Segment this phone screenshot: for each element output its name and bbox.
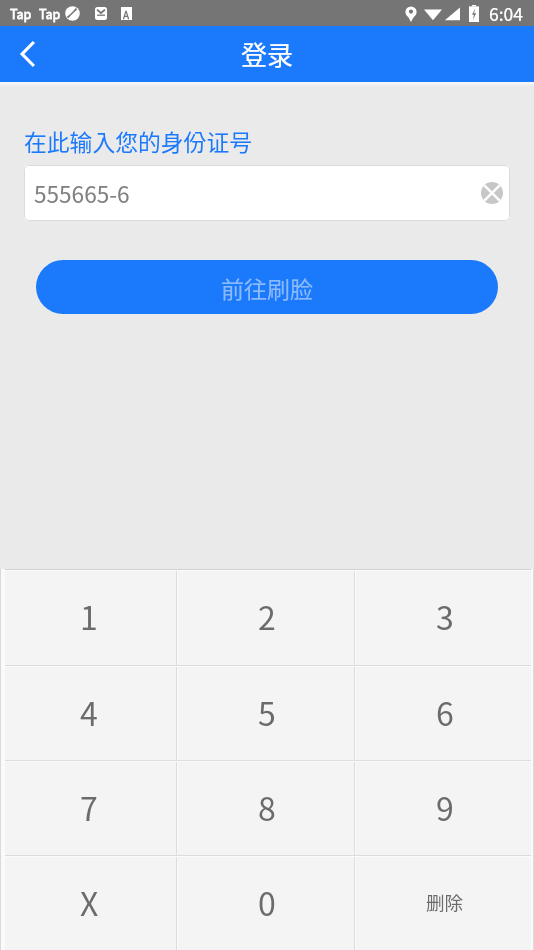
- button[interactable]: 0: [178, 857, 356, 950]
- button[interactable]: 7: [0, 762, 178, 855]
- button[interactable]: 4: [0, 667, 178, 760]
- staticText: A: [123, 7, 130, 20]
- button[interactable]: Clear text: [477, 178, 507, 208]
- staticText: 6:04: [489, 1, 524, 26]
- staticText: X: [80, 879, 99, 925]
- staticText: 8: [258, 784, 276, 830]
- staticText: 3: [436, 593, 454, 639]
- staticText: Tap: [39, 4, 61, 22]
- staticText: 删除: [426, 888, 464, 915]
- staticText: 6: [436, 689, 454, 735]
- staticText: 5: [258, 689, 276, 735]
- staticText: 9: [436, 784, 454, 830]
- staticText: 2: [258, 593, 276, 639]
- button[interactable]: 3: [356, 571, 534, 665]
- staticText: Tap: [10, 4, 32, 22]
- button[interactable]: 1: [0, 571, 178, 665]
- button[interactable]: 8: [178, 762, 356, 855]
- button[interactable]: 555665-6: [24, 165, 510, 221]
- staticText: 4: [80, 689, 98, 735]
- button[interactable]: 6: [356, 667, 534, 760]
- button[interactable]: 前往刷脸: [36, 260, 498, 314]
- button[interactable]: Back: [0, 26, 56, 82]
- staticText: 在此输入您的身份证号: [24, 125, 252, 158]
- button[interactable]: 删除: [356, 857, 534, 950]
- staticText: 555665-6: [34, 177, 130, 210]
- button[interactable]: X: [0, 857, 178, 950]
- staticText: 1: [80, 593, 98, 639]
- staticText: 0: [258, 879, 276, 925]
- staticText: 登录: [241, 35, 294, 73]
- staticText: 前往刷脸: [221, 271, 313, 304]
- button[interactable]: 5: [178, 667, 356, 760]
- button[interactable]: 2: [178, 571, 356, 665]
- staticText: 7: [80, 784, 98, 830]
- button[interactable]: 9: [356, 762, 534, 855]
